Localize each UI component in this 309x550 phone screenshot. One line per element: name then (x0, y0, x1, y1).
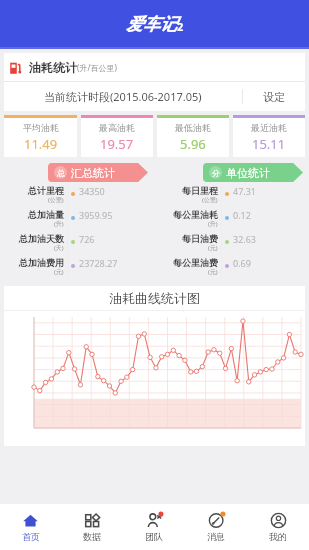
staticText: 每日里程 (182, 185, 218, 196)
staticText: 2 (177, 19, 184, 34)
staticText: 首页 (22, 531, 40, 542)
staticText: 分 (212, 168, 220, 178)
staticText: 消息 (207, 531, 225, 542)
button[interactable]: 总计里程 (0, 182, 154, 206)
staticText: 23728.27 (79, 257, 118, 269)
staticText: (升/百公里) (77, 62, 117, 73)
button[interactable]: 数据 (61, 504, 123, 550)
staticText: 最高油耗 (99, 122, 135, 133)
staticText: (升) (54, 220, 64, 228)
staticText: 11.49 (24, 135, 58, 153)
button[interactable]: 我的 (247, 504, 309, 550)
staticText: (元) (208, 244, 218, 252)
staticText: 每日油费 (182, 233, 218, 244)
staticText: (元) (54, 268, 64, 276)
button[interactable]: 设定 (243, 82, 305, 111)
staticText: 总加油费用 (19, 257, 64, 268)
staticText: (天) (54, 244, 64, 252)
button[interactable]: 最近油耗 (233, 115, 305, 157)
button[interactable]: 总加油费用 (0, 254, 154, 278)
staticText: 34350 (79, 185, 105, 197)
staticText: 我的 (269, 531, 287, 542)
staticText: (升) (208, 220, 218, 228)
staticText: (公里) (48, 196, 64, 204)
staticText: 设定 (263, 90, 285, 104)
staticText: 最低油耗 (175, 122, 211, 133)
staticText: 油耗曲线统计图 (109, 290, 200, 306)
staticText: 最近油耗 (251, 122, 287, 133)
staticText: 47.31 (233, 185, 257, 197)
button[interactable]: 分 (203, 163, 303, 182)
button[interactable]: 首页 (0, 504, 61, 550)
staticText: 19.57 (100, 135, 134, 153)
button[interactable]: 每公里油耗 (154, 206, 309, 230)
staticText: 0.12 (233, 209, 251, 221)
staticText: 总加油量 (28, 209, 64, 220)
staticText: 平均油耗 (23, 122, 59, 133)
staticText: 数据 (83, 531, 101, 542)
button[interactable]: 最高油耗 (81, 115, 153, 157)
staticText: (元) (208, 268, 218, 276)
staticText: 总 (57, 168, 65, 178)
staticText: 0.69 (233, 257, 251, 269)
staticText: 单位统计 (226, 166, 270, 180)
button[interactable]: 总加油天数 (0, 230, 154, 254)
staticText: 当前统计时段(2015.06-2017.05) (44, 89, 202, 104)
staticText: 5.96 (180, 135, 206, 153)
staticText: 每公里油费 (173, 257, 218, 268)
button[interactable]: 平均油耗 (4, 115, 77, 157)
staticText: 总加油天数 (19, 233, 64, 244)
button[interactable]: 每公里油费 (154, 254, 309, 278)
staticText: 15.11 (252, 135, 286, 153)
staticText: 爱车记 (126, 14, 177, 35)
staticText: 32.63 (233, 233, 257, 245)
staticText: 团队 (145, 531, 163, 542)
staticText: 汇总统计 (71, 166, 115, 180)
button[interactable]: 总加油量 (0, 206, 154, 230)
staticText: 每公里油耗 (173, 209, 218, 220)
button[interactable]: 消息 (185, 504, 247, 550)
staticText: 总计里程 (28, 185, 64, 196)
staticText: 726 (79, 233, 95, 245)
staticText: 3959.95 (79, 209, 113, 221)
button[interactable]: 最低油耗 (157, 115, 229, 157)
button[interactable]: 总 (48, 163, 148, 182)
button[interactable]: 每日油费 (154, 230, 309, 254)
button[interactable]: 每日里程 (154, 182, 309, 206)
button[interactable]: 团队 (123, 504, 185, 550)
staticText: 油耗统计 (29, 60, 77, 75)
staticText: (公里) (202, 196, 218, 204)
